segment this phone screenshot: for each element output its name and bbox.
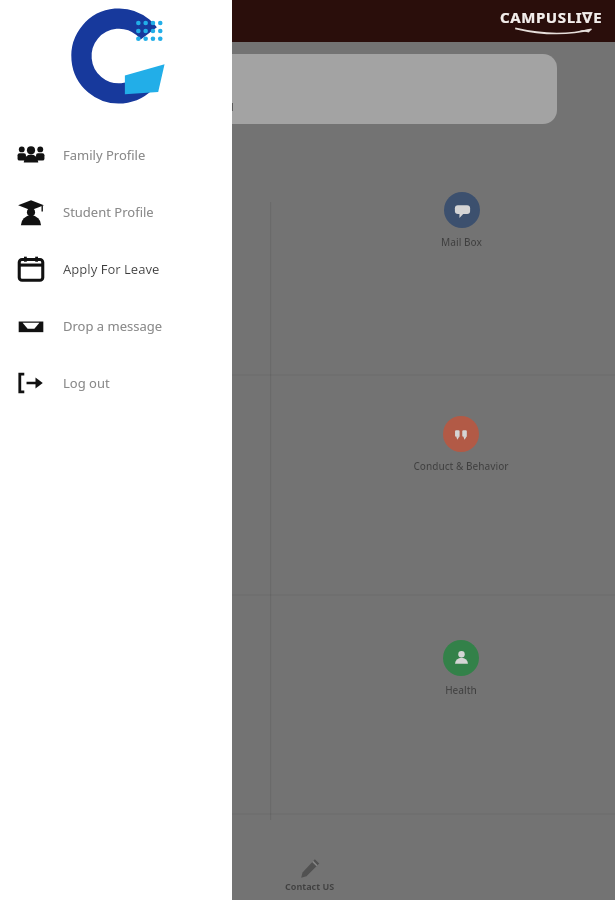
button[interactable]: Health xyxy=(437,634,485,703)
staticText: Apply For Leave xyxy=(63,260,160,278)
button[interactable]: Log out xyxy=(0,354,232,411)
staticText: Student Profile xyxy=(63,203,154,221)
button[interactable]: Contact US xyxy=(285,857,335,892)
button[interactable]: SONU xyxy=(62,54,557,124)
staticText: Conduct & Behavior xyxy=(413,459,509,473)
staticText: Log out xyxy=(63,374,110,392)
button[interactable]: Family Profile xyxy=(0,126,232,183)
button[interactable]: Newsletters xyxy=(119,186,189,255)
button[interactable]: Student Profile xyxy=(0,183,232,240)
button[interactable]: Conduct & Behavior xyxy=(407,410,515,479)
staticText: 9th-N-1 xyxy=(136,82,181,98)
staticText: Health xyxy=(445,683,477,697)
button[interactable]: Mail Box xyxy=(435,186,488,255)
staticText: Family Profile xyxy=(63,146,146,164)
staticText: SONU xyxy=(136,65,169,80)
staticText: Drop a message xyxy=(63,317,163,335)
staticText: Contact US xyxy=(285,880,335,892)
staticText: Stellar Sr. Sec. School xyxy=(136,100,234,114)
staticText: Mail Box xyxy=(441,235,482,249)
button[interactable]: Apply For Leave xyxy=(0,240,232,297)
button[interactable]: Drop a message xyxy=(0,297,232,354)
staticText: CAMPUSLI∇E xyxy=(500,7,603,27)
button[interactable]: CampusLive xyxy=(498,7,605,36)
